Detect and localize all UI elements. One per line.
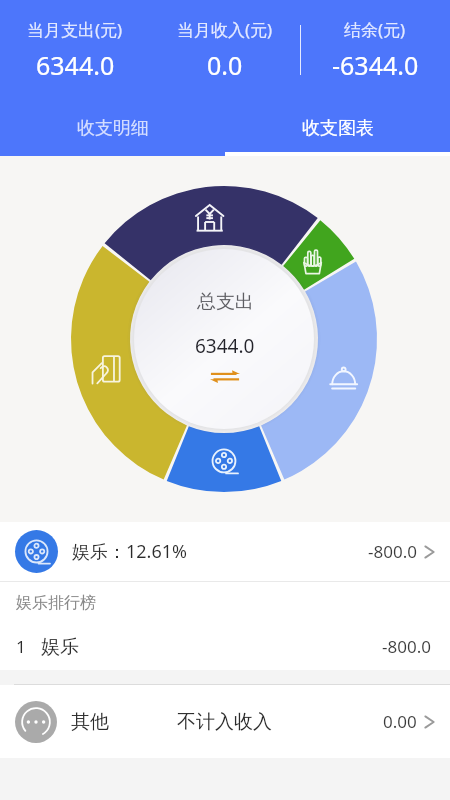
staticText: 结余(元) (344, 18, 406, 41)
staticText: 娱乐 (41, 635, 79, 659)
button[interactable]: 娱乐：12.61% (0, 522, 450, 581)
other: Open details (424, 542, 435, 562)
staticText: 收支图表 (302, 117, 374, 140)
staticText: -6344.0 (332, 48, 419, 82)
staticText: 其他 (71, 710, 109, 734)
staticText: 收支明细 (77, 117, 149, 140)
staticText: 娱乐排行榜 (16, 593, 96, 613)
staticText: 6344.0 (36, 48, 115, 82)
staticText: 0.00 (383, 710, 417, 733)
staticText: 总支出 (197, 290, 254, 314)
staticText: 当月支出(元) (27, 18, 123, 41)
staticText: 娱乐：12.61% (72, 539, 187, 564)
staticText: -800.0 (368, 540, 417, 563)
button[interactable]: 其他 (0, 685, 450, 758)
button[interactable]: 收支图表 (225, 100, 450, 156)
staticText: 1 (16, 635, 26, 658)
other: Switch chart (209, 370, 241, 383)
staticText: -800.0 (382, 635, 431, 658)
staticText: 不计入收入 (177, 710, 272, 734)
button[interactable]: 1 (0, 623, 450, 670)
staticText: 当月收入(元) (177, 18, 273, 41)
staticText: 0.0 (207, 48, 243, 82)
button[interactable]: 收支明细 (0, 100, 225, 156)
staticText: 6344.0 (195, 333, 255, 359)
other: Open details (424, 712, 435, 732)
